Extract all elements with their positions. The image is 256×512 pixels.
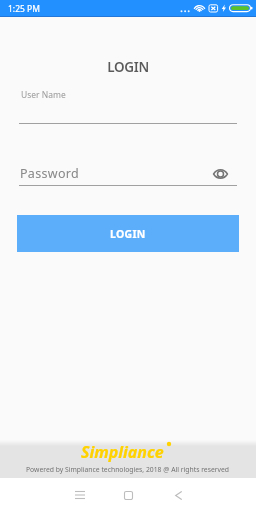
button[interactable]: Recents [62, 480, 98, 510]
button[interactable]: Show password [209, 163, 231, 185]
staticText: LOGIN [110, 227, 146, 241]
staticText: Password [20, 165, 79, 182]
staticText: LOGIN [0, 58, 256, 76]
button[interactable]: Back [160, 480, 196, 510]
staticText: Simpliance [81, 441, 164, 463]
staticText: 1:25 PM [8, 3, 40, 15]
staticText: User Name [21, 89, 66, 101]
button[interactable]: Home [110, 480, 146, 510]
staticText: Powered by Simpliance technologies, 2018… [26, 465, 230, 474]
button[interactable]: LOGIN [17, 215, 239, 252]
